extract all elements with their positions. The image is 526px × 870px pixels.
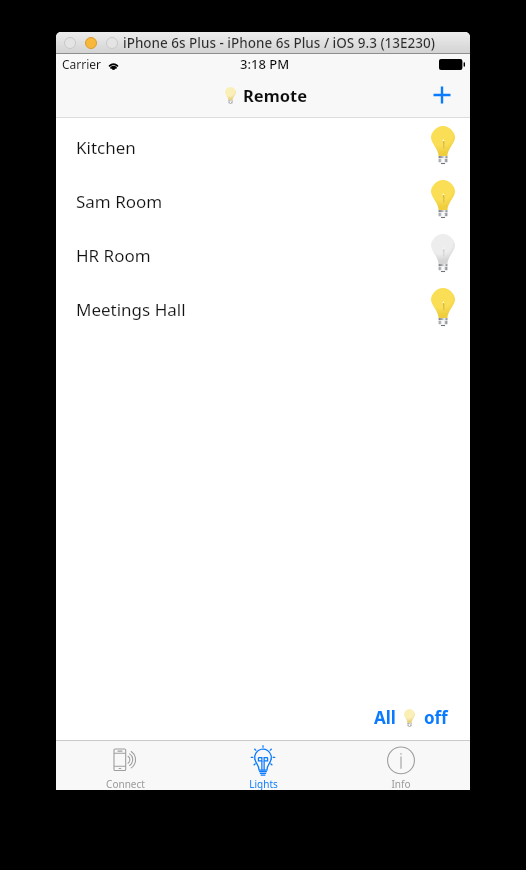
button[interactable]: Connect (56, 741, 194, 790)
button[interactable]: Kitchen (56, 120, 470, 174)
button[interactable]: Meetings Hall (56, 282, 470, 336)
staticText: Carrier (62, 56, 102, 72)
staticText: off (424, 706, 448, 729)
button[interactable]: Sam Room (56, 174, 470, 228)
button[interactable]: Info (332, 741, 470, 790)
staticText: Lights (249, 777, 278, 790)
staticText: Meetings Hall (76, 298, 186, 321)
staticText: iPhone 6s Plus - iPhone 6s Plus / iOS 9.… (123, 34, 435, 52)
staticText: Remote (243, 84, 308, 106)
staticText: HR Room (76, 244, 151, 267)
staticText: All (374, 706, 396, 729)
staticText: Sam Room (76, 190, 163, 213)
button[interactable]: Lights (194, 741, 332, 790)
button[interactable]: All (374, 706, 448, 729)
staticText: Connect (106, 777, 145, 790)
staticText: 3:18 PM (240, 55, 290, 73)
button[interactable]: Add light (425, 80, 457, 112)
staticText: Info (391, 777, 411, 790)
staticText: Kitchen (76, 136, 136, 159)
button[interactable]: HR Room (56, 228, 470, 282)
